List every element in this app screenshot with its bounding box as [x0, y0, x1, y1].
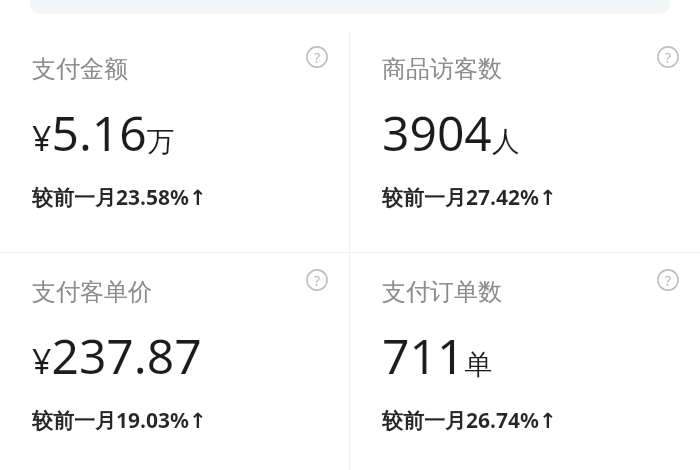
staticText: 较前一月19.03%↑: [32, 406, 207, 435]
staticText: 支付订单数: [382, 277, 502, 307]
staticText: 较前一月26.74%↑: [382, 406, 557, 435]
staticText: ?: [665, 48, 672, 67]
staticText: 支付金额: [32, 54, 128, 84]
staticText: ¥5.16万: [32, 100, 175, 165]
staticText: ?: [314, 48, 321, 67]
button[interactable]: 帮助说明: [350, 253, 700, 470]
staticText: 较前一月27.42%↑: [382, 183, 557, 212]
button[interactable]: 帮助说明: [653, 42, 683, 72]
button[interactable]: 帮助说明: [0, 30, 349, 252]
staticText: 711单: [382, 323, 493, 388]
staticText: 商品访客数: [382, 54, 502, 84]
staticText: 较前一月23.58%↑: [32, 183, 207, 212]
button[interactable]: 帮助说明: [350, 30, 700, 252]
button[interactable]: 帮助说明: [302, 42, 332, 72]
staticText: ¥237.87: [32, 323, 202, 388]
staticText: ?: [314, 271, 321, 290]
staticText: ?: [665, 271, 672, 290]
button[interactable]: 帮助说明: [0, 253, 349, 470]
staticText: 支付客单价: [32, 277, 152, 307]
button[interactable]: 帮助说明: [302, 265, 332, 295]
staticText: 3904人: [382, 100, 520, 165]
button[interactable]: 帮助说明: [653, 265, 683, 295]
